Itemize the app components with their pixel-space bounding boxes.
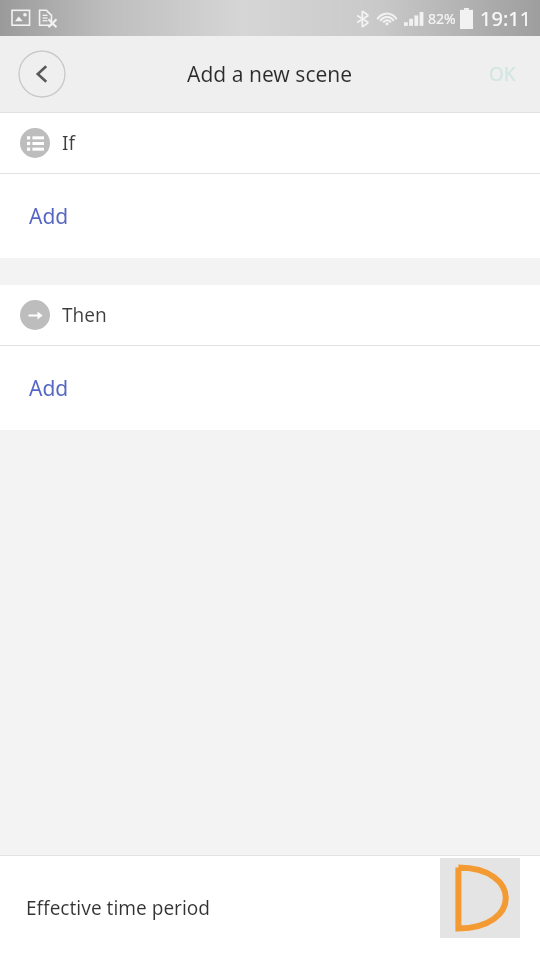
button[interactable]: Add <box>0 174 540 258</box>
staticText: Add a new scene <box>187 60 353 89</box>
staticText: Then <box>62 302 107 328</box>
staticText: 82% <box>428 9 456 28</box>
staticText: If <box>62 130 75 156</box>
staticText: Add <box>29 374 69 403</box>
button[interactable]: Add <box>0 346 540 430</box>
staticText: OK <box>489 61 516 87</box>
staticText: Effective time period <box>26 895 211 921</box>
staticText: All day <box>449 897 502 920</box>
button[interactable]: Back <box>18 50 66 98</box>
staticText: Add <box>29 202 69 231</box>
button[interactable]: OK <box>479 53 526 95</box>
button[interactable]: Effective time period <box>0 856 540 960</box>
button[interactable]: Then <box>0 285 540 345</box>
staticText: 19:11 <box>480 5 532 32</box>
button[interactable]: If <box>0 113 540 173</box>
